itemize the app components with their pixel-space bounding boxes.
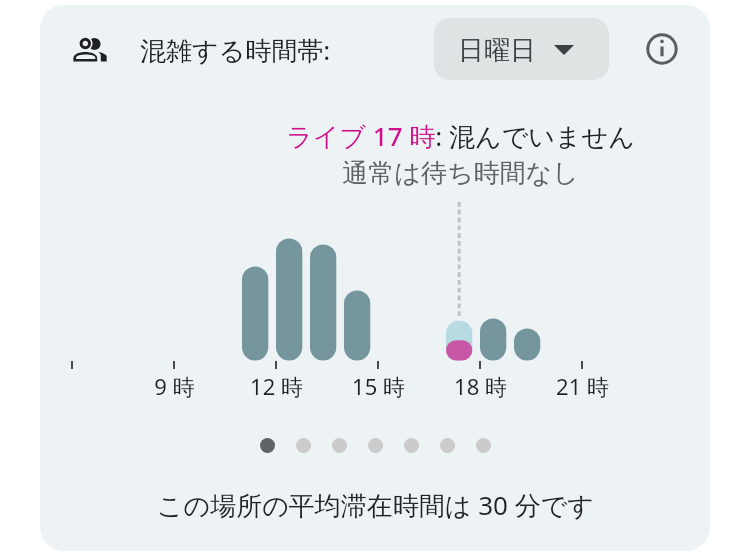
- button[interactable]: [440, 438, 455, 453]
- button[interactable]: 詳細情報: [638, 25, 685, 72]
- button[interactable]: [332, 438, 347, 453]
- button[interactable]: 日曜日: [434, 18, 609, 80]
- button[interactable]: 混雑する時間帯: [66, 29, 114, 69]
- staticText: 21 時: [556, 371, 609, 401]
- staticText: 18 時: [454, 371, 507, 401]
- staticText: ライブ 17 時: 混んでいません: [286, 118, 635, 154]
- button[interactable]: [476, 438, 491, 453]
- staticText: 9 時: [154, 371, 195, 401]
- button[interactable]: [296, 438, 311, 453]
- button[interactable]: [260, 438, 275, 453]
- button[interactable]: [368, 438, 383, 453]
- staticText: 12 時: [250, 371, 303, 401]
- staticText: 日曜日: [458, 34, 536, 67]
- staticText: 15 時: [352, 371, 405, 401]
- button[interactable]: [404, 438, 419, 453]
- staticText: この場所の平均滞在時間は 30 分です: [157, 487, 594, 523]
- staticText: 混雑する時間帯:: [140, 32, 331, 68]
- staticText: 通常は待ち時間なし: [342, 157, 579, 190]
